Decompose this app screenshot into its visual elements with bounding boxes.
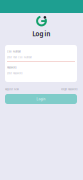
staticText: Register Now: [5, 88, 19, 91]
staticText: Forgot Password: [61, 88, 77, 91]
staticText: Password: [7, 66, 16, 69]
staticText: Enter Password: [7, 72, 22, 75]
staticText: Log in: [32, 30, 50, 38]
button[interactable]: Register Now: [5, 88, 19, 91]
staticText: Login: [36, 97, 45, 101]
staticText: Enter Your Cell Number: [7, 56, 32, 59]
button[interactable]: Login: [5, 94, 77, 104]
staticText: Cell Number: [7, 50, 21, 53]
button[interactable]: Forgot Password: [61, 88, 77, 91]
